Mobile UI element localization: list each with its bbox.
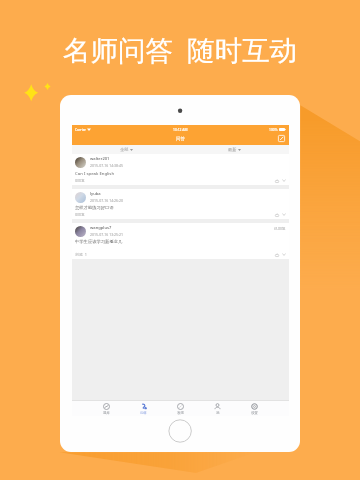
button[interactable]: wangplus7 bbox=[72, 223, 289, 259]
staticText: wangplus7 bbox=[90, 225, 112, 231]
staticText: 名师问答 随时互动 bbox=[63, 31, 298, 69]
staticText: 10:12 AM bbox=[173, 127, 188, 131]
staticText: walter201 bbox=[90, 156, 110, 162]
staticText: 全部 bbox=[120, 147, 129, 152]
staticText: 发现 bbox=[177, 411, 184, 415]
staticText: 我 bbox=[216, 411, 220, 415]
button[interactable]: 我 bbox=[199, 403, 236, 415]
staticText: 设置 bbox=[251, 411, 258, 415]
staticText: 0回复 bbox=[75, 212, 86, 217]
button[interactable]: walter201 bbox=[72, 154, 289, 185]
staticText: 题库 bbox=[103, 411, 110, 415]
staticText: 浏览 1 bbox=[75, 252, 88, 257]
staticText: 已回复 bbox=[274, 226, 286, 231]
button[interactable]: lyuba bbox=[72, 189, 289, 219]
staticText: Carrier bbox=[75, 127, 86, 131]
button[interactable]: 设置 bbox=[236, 403, 273, 415]
button[interactable]: 发现 bbox=[162, 403, 199, 415]
staticText: lyuba bbox=[90, 191, 101, 197]
staticText: 2015-07-16 13:25:21 bbox=[90, 232, 124, 237]
staticText: 最新 bbox=[228, 147, 237, 152]
staticText: 2015-07-16 14:38:45 bbox=[90, 163, 124, 168]
staticText: Can I speak English bbox=[75, 170, 115, 176]
staticText: 2015-07-16 14:26:20 bbox=[90, 198, 124, 203]
button[interactable]: 题库 bbox=[88, 403, 125, 415]
staticText: 怎样才能练习好口语 bbox=[75, 205, 114, 210]
staticText: 问答 bbox=[176, 136, 185, 142]
button[interactable]: Ask a question bbox=[278, 135, 285, 142]
staticText: 中学生应该学习新概念几 bbox=[75, 239, 123, 244]
button[interactable]: 问答 bbox=[125, 403, 162, 415]
staticText: 问答 bbox=[140, 411, 147, 415]
button[interactable]: 最新 bbox=[180, 147, 289, 152]
staticText: 0回复 bbox=[75, 178, 86, 183]
staticText: 100% bbox=[269, 127, 278, 131]
button[interactable]: 全部 bbox=[72, 147, 180, 152]
